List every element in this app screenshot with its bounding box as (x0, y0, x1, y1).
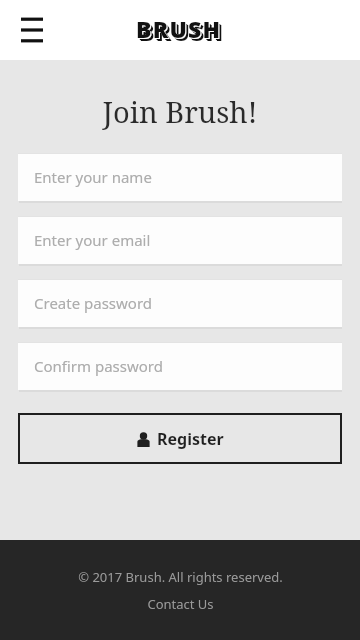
staticText: BRUSH (139, 16, 225, 47)
staticText: BRUSH (138, 15, 224, 46)
button[interactable]: Contact Us (147, 595, 214, 613)
staticText: Join Brush! (0, 92, 360, 131)
button[interactable]: Enter your email (18, 216, 342, 264)
button[interactable]: Create password (18, 279, 342, 327)
button[interactable]: Open navigation menu (14, 12, 50, 48)
staticText: Confirm password (34, 356, 163, 376)
button[interactable]: Confirm password (18, 342, 342, 390)
button[interactable]: Enter your name (18, 153, 342, 201)
staticText: © 2017 Brush. All rights reserved. (78, 568, 283, 586)
staticText: Create password (34, 293, 153, 313)
staticText: Contact Us (147, 595, 214, 613)
staticText: Enter your email (34, 230, 151, 250)
staticText: Register (157, 428, 224, 450)
staticText: BRUSH (137, 14, 223, 45)
staticText: BRUSH (136, 13, 222, 44)
staticText: Enter your name (34, 167, 152, 187)
button[interactable]: Register (18, 413, 342, 464)
